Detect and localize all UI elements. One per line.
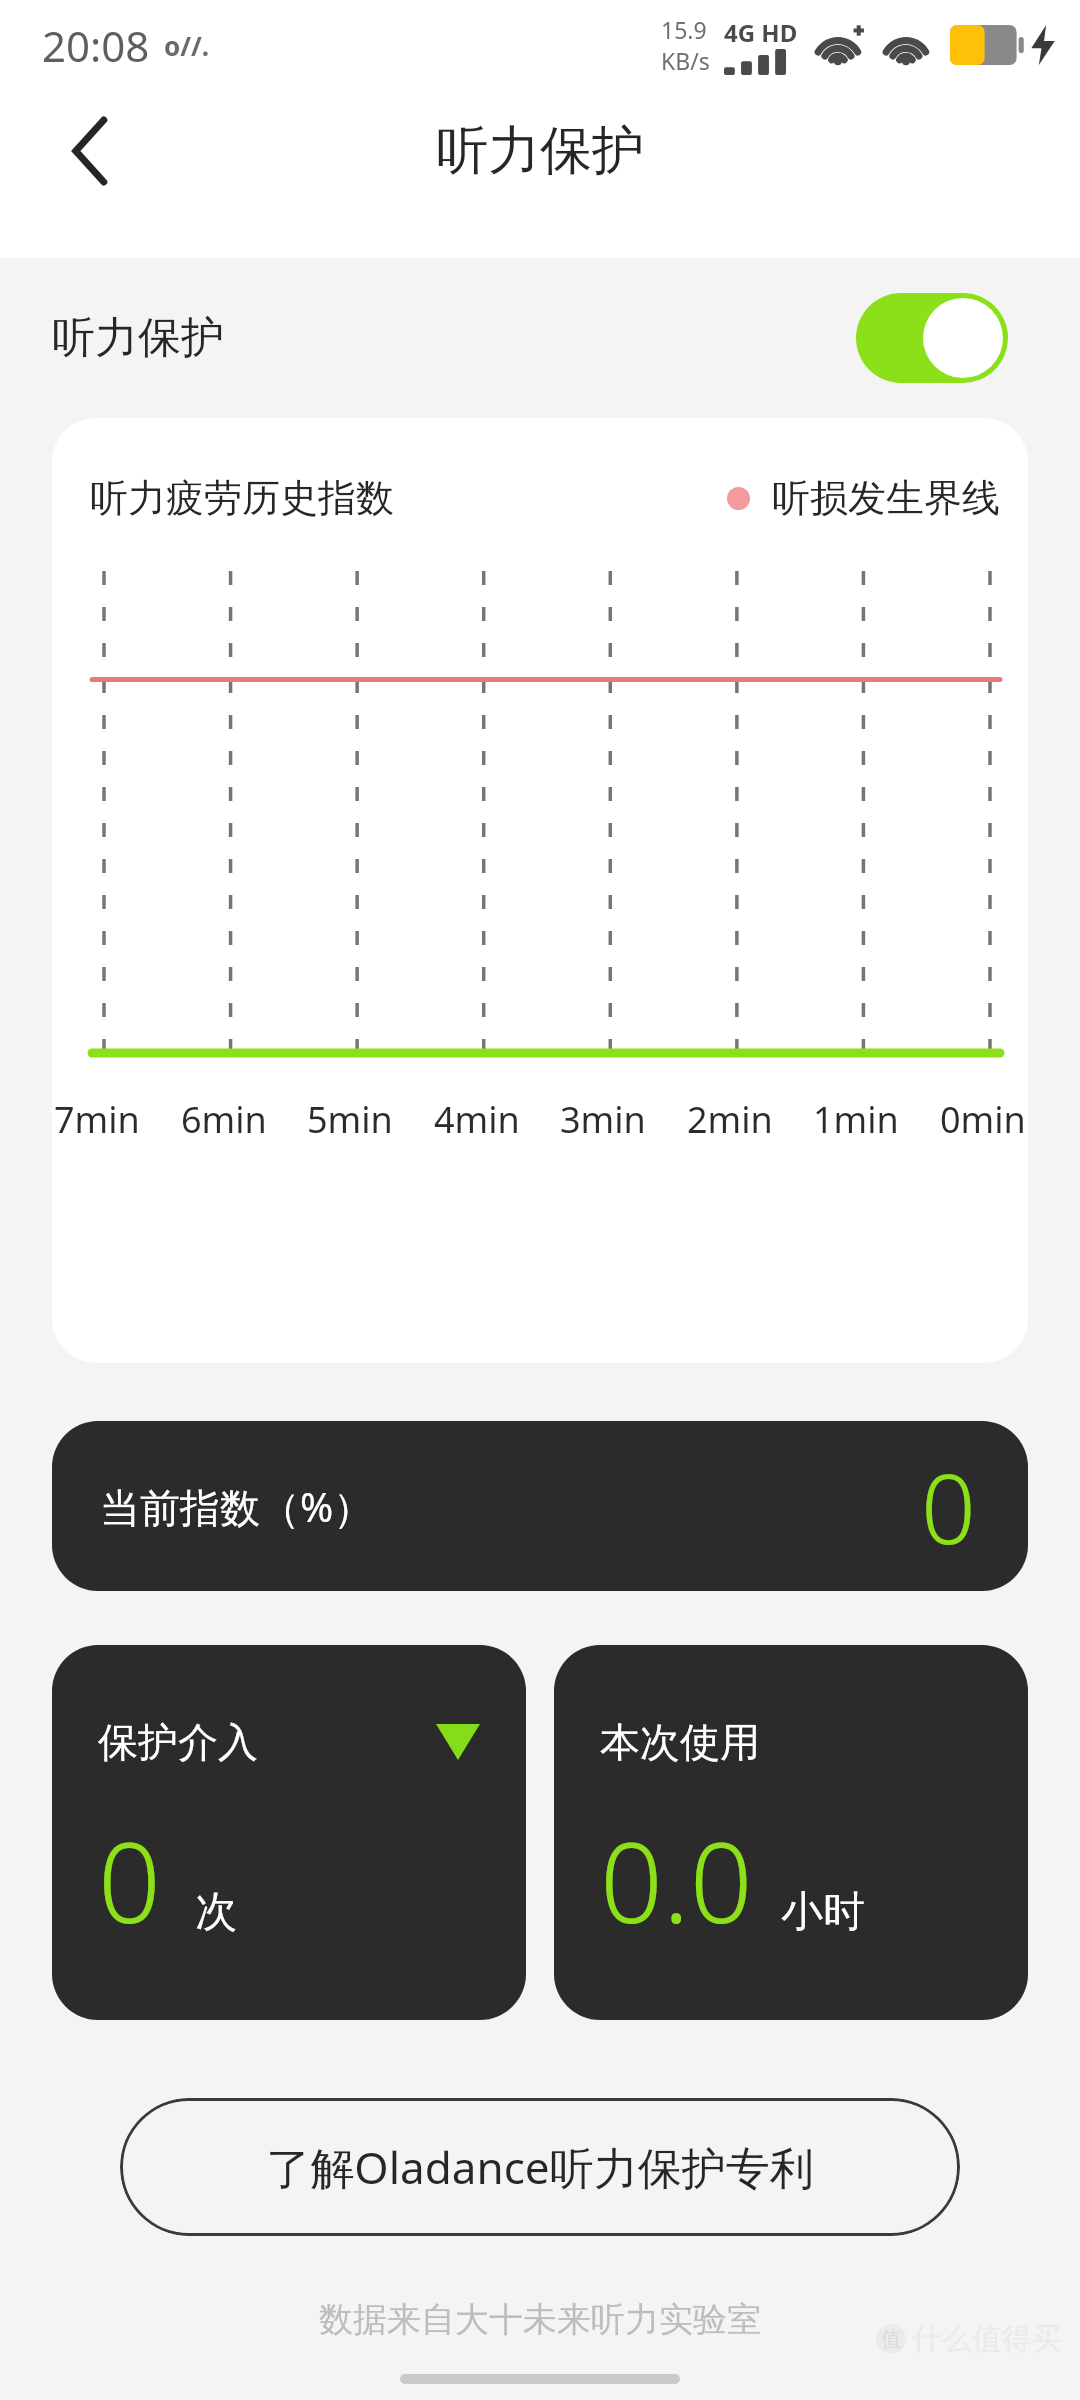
staticText: 听力疲劳历史指数	[90, 474, 394, 522]
button[interactable]: 听力保护	[0, 258, 1080, 418]
staticText: 2min	[687, 1095, 773, 1144]
staticText: 听损发生界线	[772, 474, 1000, 522]
staticText: 7min	[54, 1095, 140, 1144]
staticText: 了解Oladance听力保护专利	[266, 2137, 814, 2197]
button[interactable]: Back	[48, 108, 134, 194]
staticText: 听力保护	[52, 311, 224, 365]
button[interactable]: 保护介入	[52, 1645, 526, 2020]
staticText: 0.0	[600, 1805, 753, 1955]
staticText: 0min	[940, 1095, 1026, 1144]
staticText: 20:08	[42, 17, 150, 74]
button[interactable]: 了解Oladance听力保护专利	[120, 2098, 960, 2236]
staticText: 听力保护	[436, 118, 644, 184]
staticText: 15.9	[661, 14, 707, 45]
staticText: 当前指数（%）	[100, 1479, 374, 1534]
other: Decrease	[436, 1724, 480, 1760]
staticText: 次	[195, 1886, 237, 1939]
staticText: 0	[98, 1805, 161, 1955]
button[interactable]: 当前指数（%）	[52, 1421, 1028, 1591]
staticText: 本次使用	[600, 1717, 760, 1767]
staticText: 值	[881, 2327, 901, 2352]
staticText: 0	[921, 1441, 976, 1572]
staticText: 5min	[307, 1095, 393, 1144]
staticText: 4min	[434, 1095, 520, 1144]
button[interactable]: Hearing protection toggle, on	[856, 293, 1008, 383]
staticText: o//.	[164, 28, 210, 63]
staticText: 1min	[813, 1095, 899, 1144]
staticText: 4G HD	[724, 16, 798, 49]
staticText: 3min	[560, 1095, 646, 1144]
staticText: 6min	[181, 1095, 267, 1144]
staticText: 什么值得买	[912, 2320, 1062, 2358]
staticText: 小时	[781, 1886, 865, 1939]
staticText: KB/s	[661, 45, 710, 76]
staticText: 保护介入	[98, 1717, 258, 1767]
staticText: 数据来自大十未来听力实验室	[0, 2298, 1080, 2341]
button[interactable]: 本次使用	[554, 1645, 1028, 2020]
